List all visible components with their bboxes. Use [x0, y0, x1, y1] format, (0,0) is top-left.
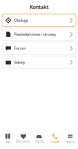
button[interactable]: Obsługa: [2, 14, 76, 27]
staticText: Forum: [14, 46, 26, 51]
button[interactable]: Start: [0, 128, 16, 149]
staticText: Oferta: [35, 140, 43, 143]
button[interactable]: Powiadomienia i umowy: [2, 28, 76, 41]
staticText: Kontakt: [50, 140, 60, 144]
button[interactable]: Więcej: [62, 128, 78, 149]
staticText: Więcej: [66, 140, 75, 143]
staticText: Dla Ciebie: [16, 140, 31, 143]
button[interactable]: Oferta: [31, 128, 47, 149]
staticText: Kontakt: [29, 3, 48, 11]
button[interactable]: Dla Ciebie: [16, 128, 31, 149]
button[interactable]: Salony: [2, 56, 76, 69]
button[interactable]: Kontakt: [47, 128, 62, 149]
staticText: Powiadomienia i umowy: [14, 32, 56, 37]
button[interactable]: Forum: [2, 42, 76, 55]
staticText: Start: [5, 140, 10, 143]
staticText: Salony: [14, 60, 25, 65]
staticText: Obsługa: [14, 18, 28, 23]
